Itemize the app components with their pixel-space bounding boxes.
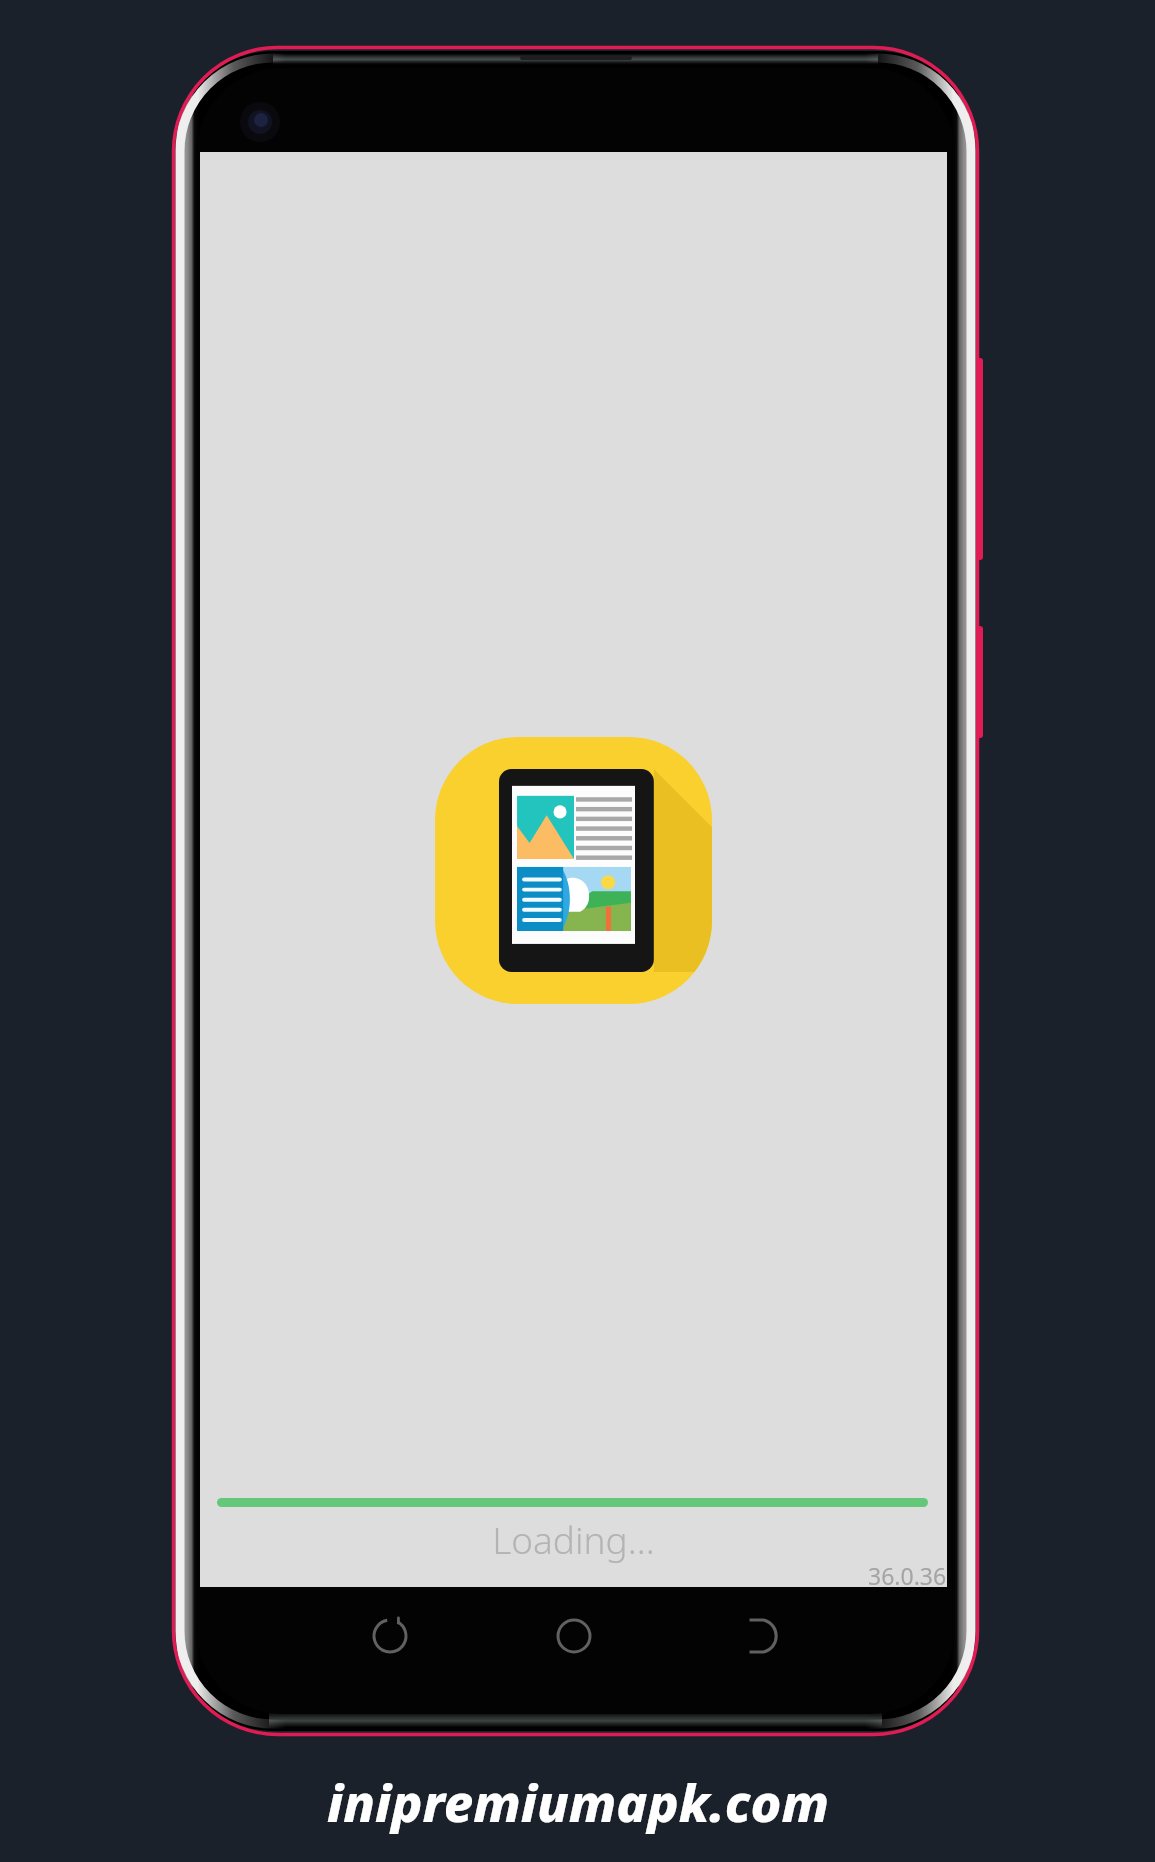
staticText: Loading... — [492, 1514, 655, 1564]
staticText: inipremiumapk.com — [327, 1766, 829, 1837]
button[interactable]: Recent apps — [356, 1602, 424, 1670]
staticText: 36.0.36 — [868, 1560, 947, 1590]
button[interactable]: Home — [540, 1602, 608, 1670]
button[interactable]: Back — [728, 1602, 796, 1670]
